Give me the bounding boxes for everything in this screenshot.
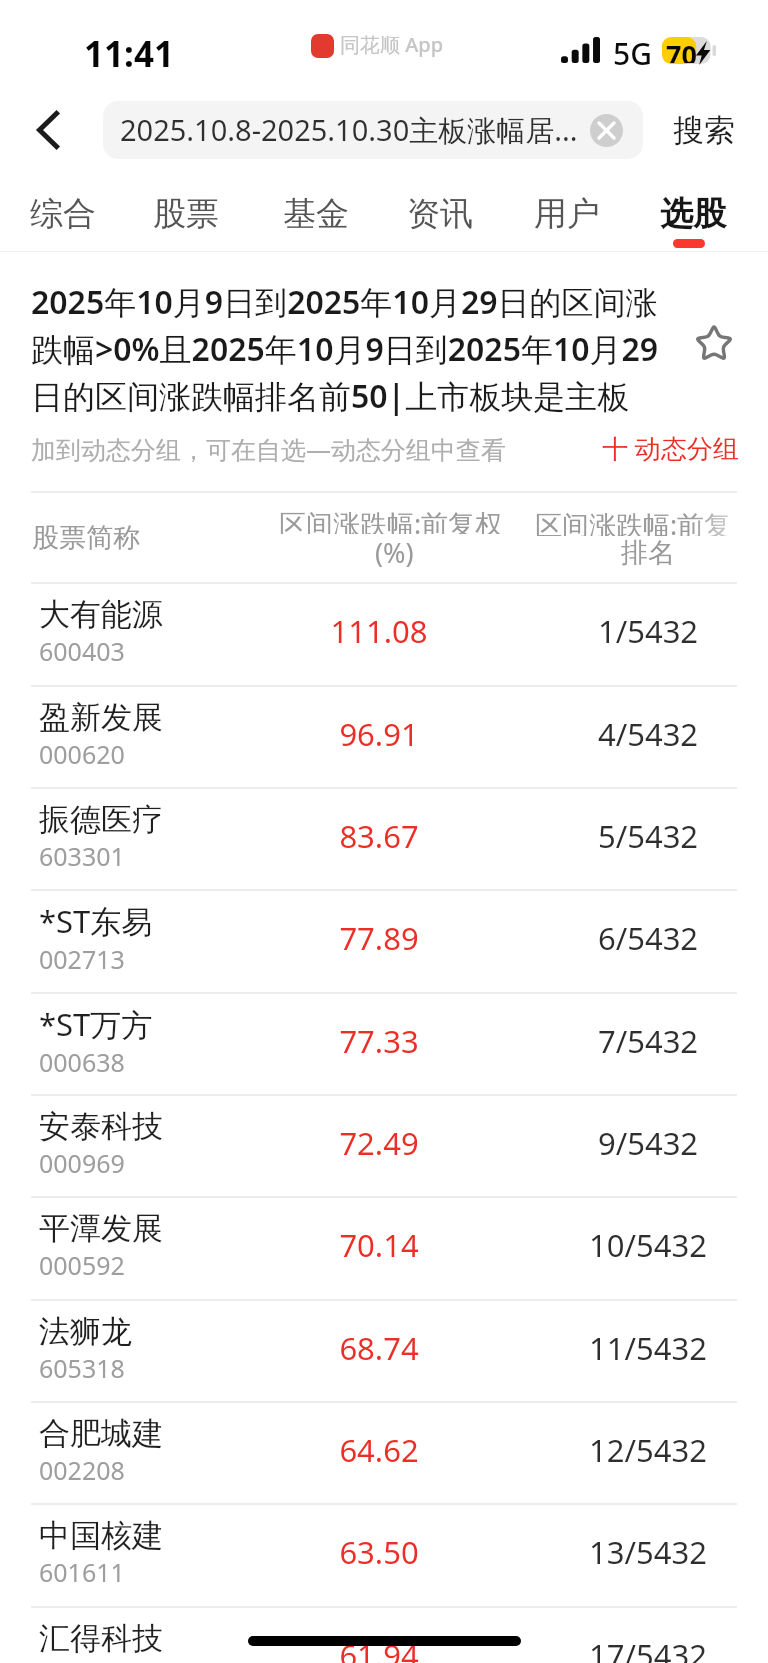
staticText: 000592 xyxy=(39,1248,125,1282)
button[interactable]: 盈新发展 xyxy=(0,686,768,788)
button[interactable]: 振德医疗 xyxy=(0,788,768,890)
button[interactable]: Favorite xyxy=(694,323,734,363)
staticText: 002208 xyxy=(39,1453,125,1487)
button[interactable]: 中国核建 xyxy=(0,1504,768,1606)
staticText: 大有能源 xyxy=(39,595,163,634)
staticText: *ST东易 xyxy=(39,900,153,942)
staticText: 63.50 xyxy=(267,1531,491,1573)
staticText: 法狮龙 xyxy=(39,1312,132,1351)
button[interactable]: 合肥城建 xyxy=(0,1402,768,1504)
staticText: 综合 xyxy=(30,193,96,235)
button[interactable]: 十 动态分组 xyxy=(602,428,739,468)
staticText: 合肥城建 xyxy=(39,1414,163,1453)
staticText: 2025.10.8-2025.10.30主板涨幅居... xyxy=(120,110,580,150)
staticText: 7/5432 xyxy=(549,1020,747,1062)
button[interactable]: 选股 xyxy=(641,184,745,252)
staticText: 区间涨跌幅:前复权 xyxy=(279,505,509,534)
staticText: 选股 xyxy=(660,193,726,235)
button[interactable]: 大有能源 xyxy=(0,583,768,685)
staticText: 000969 xyxy=(39,1146,125,1180)
button[interactable]: Clear xyxy=(590,114,623,147)
button[interactable]: 2025.10.8-2025.10.30主板涨幅居... xyxy=(103,101,643,159)
button[interactable]: 汇得科技 xyxy=(0,1607,768,1663)
staticText: 77.33 xyxy=(267,1020,491,1062)
button[interactable]: 基金 xyxy=(264,184,368,252)
button[interactable]: 资讯 xyxy=(388,184,492,252)
staticText: 13/5432 xyxy=(549,1531,747,1573)
staticText: 盈新发展 xyxy=(39,698,163,737)
staticText: 1/5432 xyxy=(549,610,747,652)
staticText: 中国核建 xyxy=(39,1516,163,1555)
staticText: 9/5432 xyxy=(549,1122,747,1164)
button[interactable]: 平潭发展 xyxy=(0,1197,768,1299)
staticText: 加到动态分组，可在自选—动态分组中查看 xyxy=(31,432,507,466)
button[interactable]: 综合 xyxy=(11,184,115,252)
staticText: 96.91 xyxy=(267,713,491,755)
staticText: 十 动态分组 xyxy=(602,430,739,466)
staticText: 002713 xyxy=(39,942,125,976)
staticText: 70 xyxy=(666,36,697,63)
staticText: 10/5432 xyxy=(549,1224,747,1266)
staticText: 股票 xyxy=(153,193,219,235)
button[interactable]: 用户 xyxy=(515,184,619,252)
staticText: 搜索 xyxy=(673,111,735,150)
staticText: 平潭发展 xyxy=(39,1209,163,1248)
staticText: 基金 xyxy=(283,193,349,235)
staticText: 2025年10月9日到2025年10月29日的区间涨跌幅>0%且2025年10月… xyxy=(31,280,667,418)
staticText: 000620 xyxy=(39,737,125,771)
button[interactable]: Back xyxy=(1,90,93,170)
staticText: 600403 xyxy=(39,634,125,668)
staticText: 68.74 xyxy=(267,1327,491,1369)
staticText: 11:41 xyxy=(84,30,174,78)
staticText: 排名 xyxy=(621,536,675,570)
staticText: 64.62 xyxy=(267,1429,491,1471)
staticText: 72.49 xyxy=(267,1122,491,1164)
staticText: 5/5432 xyxy=(549,815,747,857)
staticText: 汇得科技 xyxy=(39,1619,163,1658)
staticText: 61.94 xyxy=(267,1634,491,1663)
staticText: *ST万方 xyxy=(39,1003,153,1045)
staticText: 77.89 xyxy=(267,917,491,959)
staticText: 4/5432 xyxy=(549,713,747,755)
staticText: 5G xyxy=(613,33,652,74)
staticText: (%) xyxy=(375,534,414,571)
button[interactable]: 安泰科技 xyxy=(0,1095,768,1197)
staticText: 股票简称 xyxy=(32,521,140,555)
staticText: 111.08 xyxy=(267,610,491,652)
staticText: 000638 xyxy=(39,1045,125,1079)
staticText: 11/5432 xyxy=(549,1327,747,1369)
staticText: 70.14 xyxy=(267,1224,491,1266)
staticText: 603301 xyxy=(39,839,125,873)
button[interactable]: 搜索 xyxy=(655,95,755,165)
staticText: 601611 xyxy=(39,1555,125,1589)
staticText: 用户 xyxy=(534,193,600,235)
staticText: 605318 xyxy=(39,1351,125,1385)
button[interactable]: *ST东易 xyxy=(0,890,768,992)
staticText: 17/5432 xyxy=(549,1634,747,1663)
button[interactable]: *ST万方 xyxy=(0,993,768,1095)
staticText: 振德医疗 xyxy=(39,800,163,839)
staticText: 6/5432 xyxy=(549,917,747,959)
staticText: 83.67 xyxy=(267,815,491,857)
button[interactable]: 法狮龙 xyxy=(0,1300,768,1402)
staticText: 区间涨跌幅:前复权 xyxy=(535,506,733,536)
staticText: 12/5432 xyxy=(549,1429,747,1471)
staticText: 安泰科技 xyxy=(39,1107,163,1146)
button[interactable]: 股票 xyxy=(134,184,238,252)
staticText: 资讯 xyxy=(407,193,473,235)
staticText: 同花顺 App xyxy=(340,31,444,58)
